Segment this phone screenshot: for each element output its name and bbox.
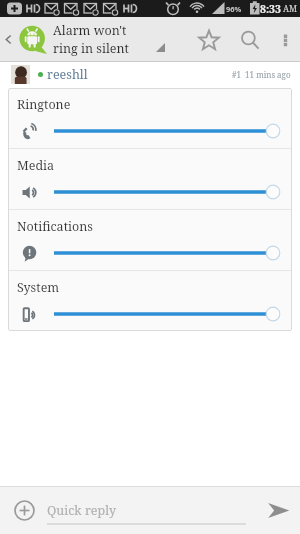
button[interactable]: Send [258, 490, 298, 530]
staticText: 8:33 [260, 2, 281, 16]
staticText: Media [17, 157, 55, 174]
button[interactable]: Forum icon [17, 24, 49, 56]
staticText: Ringtone [17, 96, 71, 113]
button[interactable]: Media [8, 149, 292, 209]
button[interactable]: Notifications [8, 210, 292, 270]
staticText: System [17, 279, 60, 296]
button[interactable]: Search [230, 17, 270, 62]
staticText: 96% [226, 4, 242, 14]
staticText: ring in silent [53, 40, 129, 57]
staticText: Quick reply [47, 502, 117, 519]
button[interactable]: More options [270, 17, 300, 62]
button[interactable]: Ringtone [8, 88, 292, 148]
staticText: #1 11 mins ago [232, 69, 291, 80]
button[interactable]: Add attachment [5, 491, 43, 529]
button[interactable]: System [8, 271, 292, 331]
button[interactable]: Expand title [149, 29, 171, 51]
staticText: Notifications [17, 218, 93, 235]
button[interactable]: Quick reply [47, 495, 246, 525]
button[interactable]: reeshll [47, 66, 88, 83]
button[interactable]: Favorite [188, 17, 230, 62]
button[interactable]: Back [0, 17, 17, 62]
staticText: AM [283, 3, 297, 15]
staticText: Alarm won't [53, 22, 127, 39]
staticText: reeshll [47, 66, 88, 83]
